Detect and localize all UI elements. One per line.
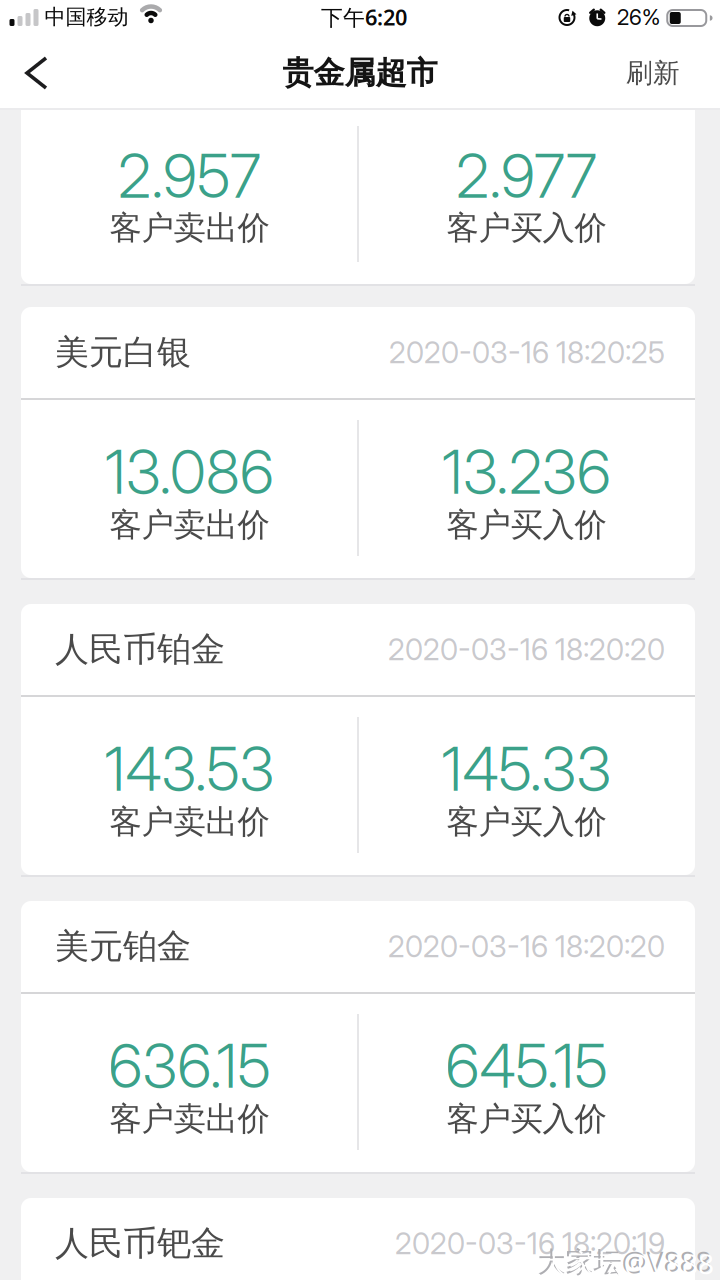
staticText: 145.33 bbox=[441, 733, 611, 805]
staticText: 大家坛@V888 bbox=[540, 1244, 714, 1280]
staticText: 贵金属超市 bbox=[282, 53, 437, 93]
staticText: 13.086 bbox=[105, 436, 274, 508]
button[interactable]: 美元白银 bbox=[21, 307, 695, 578]
staticText: 人民币钯金 bbox=[55, 1222, 225, 1265]
button[interactable]: 人民币铂金 bbox=[21, 604, 695, 875]
staticText: 13.236 bbox=[442, 436, 611, 508]
button[interactable]: 人民币钯金 bbox=[21, 1198, 695, 1280]
staticText: 客户买入价 bbox=[446, 505, 606, 545]
button[interactable]: 刷新 bbox=[626, 56, 680, 90]
staticText: 2020-03-16 18:20:19 bbox=[395, 1226, 665, 1261]
staticText: 2020-03-16 18:20:20 bbox=[388, 632, 665, 667]
staticText: 2020-03-16 18:20:20 bbox=[388, 929, 665, 964]
staticText: 美元铂金 bbox=[55, 925, 191, 968]
staticText: 636.15 bbox=[108, 1030, 270, 1102]
staticText: 143.53 bbox=[104, 733, 274, 805]
staticText: 26% bbox=[617, 4, 660, 30]
staticText: 刷新 bbox=[626, 56, 680, 90]
staticText: 客户买入价 bbox=[446, 802, 606, 842]
staticText: 人民币铂金 bbox=[55, 628, 225, 671]
staticText: 645.15 bbox=[445, 1030, 607, 1102]
staticText: 客户买入价 bbox=[446, 208, 606, 248]
staticText: 2.977 bbox=[456, 140, 597, 212]
button[interactable] bbox=[20, 56, 54, 90]
staticText: 美元白银 bbox=[55, 331, 191, 374]
button[interactable]: 美元铂金 bbox=[21, 901, 695, 1172]
button[interactable]: 2.957 bbox=[21, 110, 695, 284]
staticText: 客户卖出价 bbox=[109, 1099, 269, 1139]
staticText: 2020-03-16 18:20:25 bbox=[389, 335, 665, 370]
staticText: 中国移动 bbox=[44, 4, 128, 30]
staticText: 下午6:20 bbox=[321, 2, 407, 32]
staticText: 客户卖出价 bbox=[109, 802, 269, 842]
staticText: 2.957 bbox=[118, 140, 261, 212]
staticText: 客户卖出价 bbox=[109, 505, 269, 545]
staticText: 大家坛@V888 bbox=[537, 1242, 711, 1280]
staticText: 客户买入价 bbox=[446, 1099, 606, 1139]
staticText: 客户卖出价 bbox=[109, 208, 269, 248]
